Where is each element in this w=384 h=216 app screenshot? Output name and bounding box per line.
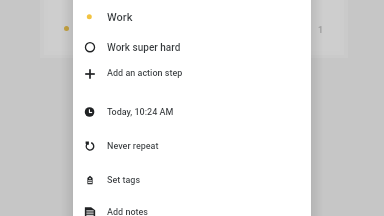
staticText: Work — [107, 11, 133, 24]
other: Add an action step — [82, 66, 98, 82]
other: Mark complete — [82, 39, 98, 55]
other: Due date — [82, 104, 98, 120]
other: Set tags — [82, 172, 98, 188]
button[interactable]: Work — [73, 0, 311, 32]
other: Repeat — [82, 138, 98, 154]
other: Work list — [82, 9, 98, 25]
staticText: Add an action step — [107, 68, 183, 79]
button[interactable]: Set tags — [73, 163, 311, 196]
staticText: Add notes — [107, 207, 149, 216]
button[interactable]: Add an action step — [73, 60, 311, 93]
staticText: 1 — [318, 25, 324, 36]
staticText: Today, 10:24 AM — [107, 107, 174, 118]
other: Add notes — [82, 204, 98, 216]
button[interactable]: Add notes — [73, 196, 311, 216]
button[interactable]: Work super hard — [73, 32, 311, 60]
button[interactable]: Today, 10:24 AM — [73, 93, 311, 129]
staticText: Never repeat — [107, 141, 159, 152]
staticText: Set tags — [107, 175, 141, 186]
staticText: Work super hard — [107, 42, 181, 54]
button[interactable]: Never repeat — [73, 129, 311, 163]
